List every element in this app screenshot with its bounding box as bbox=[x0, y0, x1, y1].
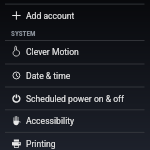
button[interactable]: Add account bbox=[0, 4, 150, 27]
staticText: Scheduled power on & off bbox=[26, 94, 125, 104]
button[interactable]: Printing bbox=[0, 132, 150, 150]
staticText: Add account bbox=[26, 11, 75, 21]
staticText: Date & time bbox=[26, 71, 71, 81]
button[interactable]: Accessibility bbox=[0, 109, 150, 132]
button[interactable]: Scheduled power on & off bbox=[0, 87, 150, 110]
staticText: Printing bbox=[26, 139, 56, 149]
staticText: SYSTEM bbox=[11, 29, 36, 37]
staticText: Accessibility bbox=[26, 116, 75, 126]
staticText: Clever Motion bbox=[26, 47, 79, 57]
button[interactable]: Date & time bbox=[0, 64, 150, 87]
button[interactable]: Clever Motion bbox=[0, 40, 150, 63]
